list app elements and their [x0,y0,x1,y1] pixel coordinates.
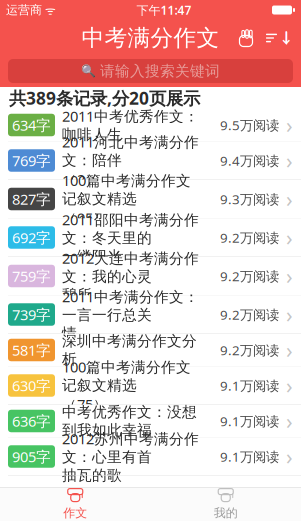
staticText: 739字 [12,305,51,324]
staticText: 692字 [12,228,51,247]
staticText: › [286,442,293,471]
staticText: › [286,371,293,400]
staticText: 905字 [12,447,51,466]
button[interactable]: 收藏 [229,21,263,55]
button[interactable]: 692字 [0,218,301,256]
staticText: 中考满分作文 [81,24,219,52]
staticText: 9.5万阅读 [220,116,279,134]
staticText: 2012苏州中考满分作文：心里有首 抽瓦的歌 [62,429,199,484]
button[interactable]: 905字 [0,437,301,475]
staticText: 🔍 [81,64,96,78]
staticText: 作文 [63,506,87,520]
staticText: 运营商 [6,3,42,17]
button[interactable]: 739字 [0,295,301,333]
button[interactable]: 作文 [0,487,150,521]
button[interactable]: 769字 [0,141,301,179]
staticText: 9.4万阅读 [220,152,279,169]
staticText: 634字 [12,115,51,135]
staticText: 9.2万阅读 [220,267,279,285]
staticText: 下午11:47 [136,2,191,18]
staticText: 630字 [12,376,51,395]
staticText: 2011邵阳中考满分作文：冬天里的 一缕阳光 [62,210,199,265]
staticText: 9.1万阅读 [220,377,279,394]
staticText: 2011中考优秀作文：咖啡人生 [62,106,199,144]
staticText: 636字 [12,411,51,431]
staticText: 769字 [12,151,51,170]
staticText: 共389条记录,分20页展示 [9,86,200,109]
staticText: › [286,146,293,175]
staticText: 深圳中考满分作文分析 [62,332,197,368]
button[interactable]: 581字 [0,334,301,366]
staticText: 9.1万阅读 [220,412,279,430]
staticText: ↓ [279,28,294,48]
staticText: 我的 [214,506,238,520]
button[interactable]: 我的 [150,487,301,521]
staticText: 100篇中考满分作文记叙文精选 （95） [62,170,191,227]
staticText: 2011中考满分作文：一言一行总关 情 [62,287,199,342]
staticText: 100篇中考满分作文记叙文精选 （75） [62,357,191,414]
staticText: › [286,407,293,435]
button[interactable]: 排序 [263,21,297,55]
staticText: 9.1万阅读 [220,448,279,465]
button[interactable]: 827字 [0,180,301,218]
staticText: › [286,300,293,329]
button[interactable]: 759字 [0,257,301,295]
staticText: 9.2万阅读 [220,229,279,246]
staticText: 2012大连中考满分作文：我的心灵 憩所 [62,248,199,304]
staticText: 9.2万阅读 [220,306,279,323]
staticText: ᯤ [42,2,56,18]
staticText: 581字 [12,340,51,360]
staticText: 2011河北中考满分作文：陪伴 （2） [62,132,199,189]
button[interactable]: 636字 [0,405,301,437]
staticText: 759字 [12,266,51,286]
staticText: 827字 [12,189,51,209]
staticText: 9.2万阅读 [220,341,279,359]
button[interactable]: 630字 [0,366,301,404]
staticText: 9.3万阅读 [220,190,279,208]
staticText: 请输入搜索关键词 [100,62,220,80]
button[interactable]: 634字 [0,109,301,141]
staticText: › [286,262,293,290]
button[interactable]: 🔍 [8,59,293,83]
staticText: › [286,223,293,252]
staticText: 中考优秀作文：没想到我如此幸福 [62,403,197,439]
staticText: › [286,185,293,213]
staticText: › [286,111,293,139]
staticText: › [286,336,293,364]
